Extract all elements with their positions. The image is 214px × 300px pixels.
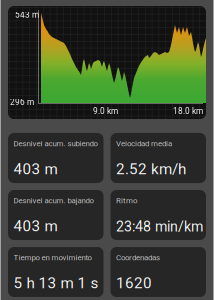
button[interactable]: Desnivel acum. subiendo [8, 133, 103, 183]
staticText: 403 m [13, 160, 57, 178]
staticText: 23:48 min/km [116, 218, 203, 235]
button[interactable]: Coordenadas [110, 247, 206, 297]
button[interactable]: Velocidad media [110, 133, 206, 183]
staticText: Velocidad media [116, 139, 172, 148]
button[interactable]: Tiempo en movimiento [8, 247, 103, 297]
staticText: Ritmo [116, 196, 137, 205]
staticText: 9.0 km [93, 106, 118, 116]
staticText: 18.0 km [173, 106, 203, 116]
staticText: Desnivel acum. bajando [13, 196, 93, 205]
staticText: 543 m [15, 10, 39, 20]
staticText: 403 m [13, 217, 57, 235]
button[interactable]: Ritmo [110, 190, 206, 240]
staticText: 5 h 13 m 1 s [13, 274, 98, 292]
staticText: Coordenadas [116, 253, 160, 262]
staticText: 2.52 km/h [116, 160, 186, 178]
staticText: 1620 [116, 274, 152, 292]
staticText: 296 m [10, 97, 34, 107]
staticText: Desnivel acum. subiendo [13, 139, 97, 148]
button[interactable]: Desnivel acum. bajando [8, 190, 103, 240]
staticText: Tiempo en movimiento [13, 253, 91, 262]
